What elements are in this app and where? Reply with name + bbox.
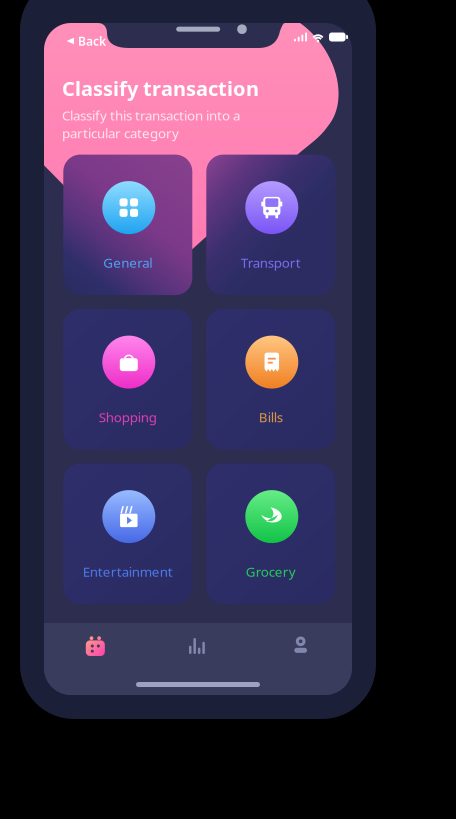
button[interactable]: Grocery (206, 464, 335, 604)
button[interactable]: Transactions (44, 633, 147, 659)
staticText: Transport (241, 254, 301, 271)
staticText: Entertainment (83, 563, 173, 580)
button[interactable]: General (63, 155, 192, 295)
staticText: Classify this transaction into a particu… (62, 107, 240, 142)
staticText: General (103, 254, 152, 271)
button[interactable]: Bills (206, 309, 335, 450)
button[interactable]: Profile (249, 633, 352, 659)
button[interactable]: Entertainment (63, 464, 192, 604)
staticText: Bills (259, 408, 283, 426)
staticText: Classify transaction (62, 75, 259, 102)
button[interactable]: Shopping (63, 309, 192, 450)
staticText: Grocery (246, 563, 296, 580)
button[interactable]: Transport (206, 155, 335, 295)
staticText: Back (78, 33, 106, 49)
button[interactable]: Statistics (147, 633, 249, 659)
staticText: Shopping (99, 408, 157, 426)
button[interactable]: Back (44, 23, 104, 47)
